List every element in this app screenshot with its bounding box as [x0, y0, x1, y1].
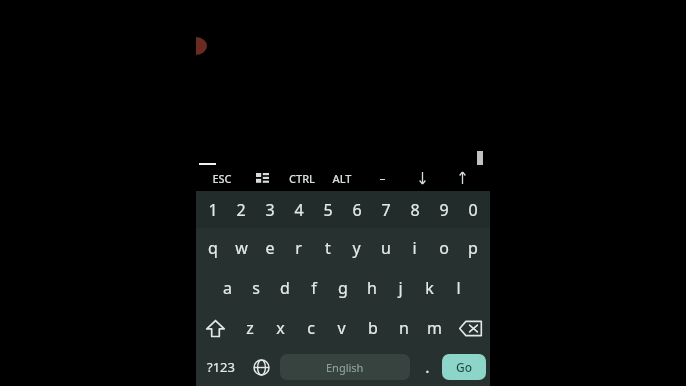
staticText: – [379, 170, 386, 186]
button[interactable]: Tab [242, 165, 282, 191]
button[interactable]: 7 [371, 191, 400, 228]
button[interactable]: f [299, 268, 328, 308]
staticText: . [425, 356, 430, 378]
staticText: x [276, 317, 285, 339]
button[interactable]: Arrow up [442, 165, 482, 191]
button[interactable]: e [255, 228, 284, 268]
staticText: y [352, 237, 361, 259]
staticText: e [265, 237, 275, 259]
staticText: 7 [381, 199, 391, 221]
button[interactable]: z [235, 308, 265, 348]
staticText: k [425, 277, 434, 299]
staticText: OK [200, 163, 215, 177]
staticText: 4 [294, 199, 304, 221]
button[interactable]: Enter [442, 354, 486, 380]
staticText: 0 [468, 199, 478, 221]
button[interactable]: ESC [202, 165, 242, 191]
staticText: a [223, 277, 232, 299]
staticText: j [398, 277, 403, 299]
button[interactable]: b [357, 308, 388, 348]
button[interactable]: . [413, 348, 442, 386]
button[interactable]: Arrow down [402, 165, 442, 191]
staticText: 1 [208, 199, 218, 221]
button[interactable]: h [357, 268, 386, 308]
button[interactable]: w [227, 228, 255, 268]
staticText: l [456, 277, 461, 299]
button[interactable]: 1 [199, 191, 227, 228]
staticText: ESC [212, 171, 232, 186]
button[interactable]: i [400, 228, 429, 268]
staticText: o [439, 237, 449, 259]
button[interactable]: n [388, 308, 419, 348]
button[interactable]: m [419, 308, 450, 348]
staticText: c [307, 317, 315, 339]
button[interactable]: 0 [458, 191, 487, 228]
button[interactable]: j [386, 268, 415, 308]
staticText: u [381, 237, 391, 259]
staticText: 9 [439, 199, 449, 221]
button[interactable]: CTRL [282, 165, 322, 191]
staticText: n [399, 317, 409, 339]
staticText: h [367, 277, 377, 299]
button[interactable]: 2 [227, 191, 255, 228]
button[interactable]: 9 [429, 191, 458, 228]
staticText: English [326, 360, 364, 375]
staticText: t [325, 237, 331, 259]
staticText: q [208, 237, 218, 259]
button[interactable]: English [280, 354, 410, 380]
button[interactable]: l [444, 268, 473, 308]
button[interactable]: 8 [400, 191, 429, 228]
staticText: m [427, 317, 442, 339]
button[interactable]: ALT [322, 165, 362, 191]
button[interactable]: c [295, 308, 326, 348]
staticText: b [368, 317, 378, 339]
button[interactable]: y [342, 228, 371, 268]
button[interactable]: x [265, 308, 295, 348]
staticText: ?123 [207, 358, 235, 376]
staticText: 3 [265, 199, 275, 221]
staticText: 8 [410, 199, 420, 221]
button[interactable]: d [270, 268, 299, 308]
staticText: r [295, 237, 302, 259]
button[interactable]: 4 [284, 191, 313, 228]
staticText: f [311, 277, 317, 299]
button[interactable]: r [284, 228, 313, 268]
button[interactable]: u [371, 228, 400, 268]
button[interactable]: Shift [196, 308, 235, 348]
button[interactable]: Backspace [450, 308, 490, 348]
button[interactable]: – [362, 165, 402, 191]
button[interactable]: 3 [255, 191, 284, 228]
staticText: v [337, 317, 346, 339]
staticText: w [235, 237, 248, 259]
button[interactable]: v [326, 308, 357, 348]
staticText: i [412, 237, 417, 259]
button[interactable]: t [313, 228, 342, 268]
staticText: 2 [236, 199, 246, 221]
button[interactable]: Change language [245, 348, 277, 386]
staticText: 5 [323, 199, 333, 221]
staticText: ALT [332, 171, 352, 186]
button[interactable]: a [213, 268, 241, 308]
staticText: CTRL [289, 171, 315, 186]
staticText: Go [456, 359, 473, 375]
button[interactable]: 5 [313, 191, 342, 228]
button[interactable]: q [199, 228, 227, 268]
button[interactable]: p [458, 228, 487, 268]
button[interactable]: k [415, 268, 444, 308]
staticText: z [246, 317, 254, 339]
button[interactable]: OK [200, 163, 215, 177]
button[interactable]: g [328, 268, 357, 308]
staticText: p [468, 237, 478, 259]
staticText: s [252, 277, 260, 299]
button[interactable]: o [429, 228, 458, 268]
staticText: d [280, 277, 290, 299]
button[interactable]: s [241, 268, 270, 308]
staticText: g [338, 277, 348, 299]
button[interactable]: ?123 [196, 348, 245, 386]
button[interactable]: 6 [342, 191, 371, 228]
staticText: 6 [352, 199, 362, 221]
